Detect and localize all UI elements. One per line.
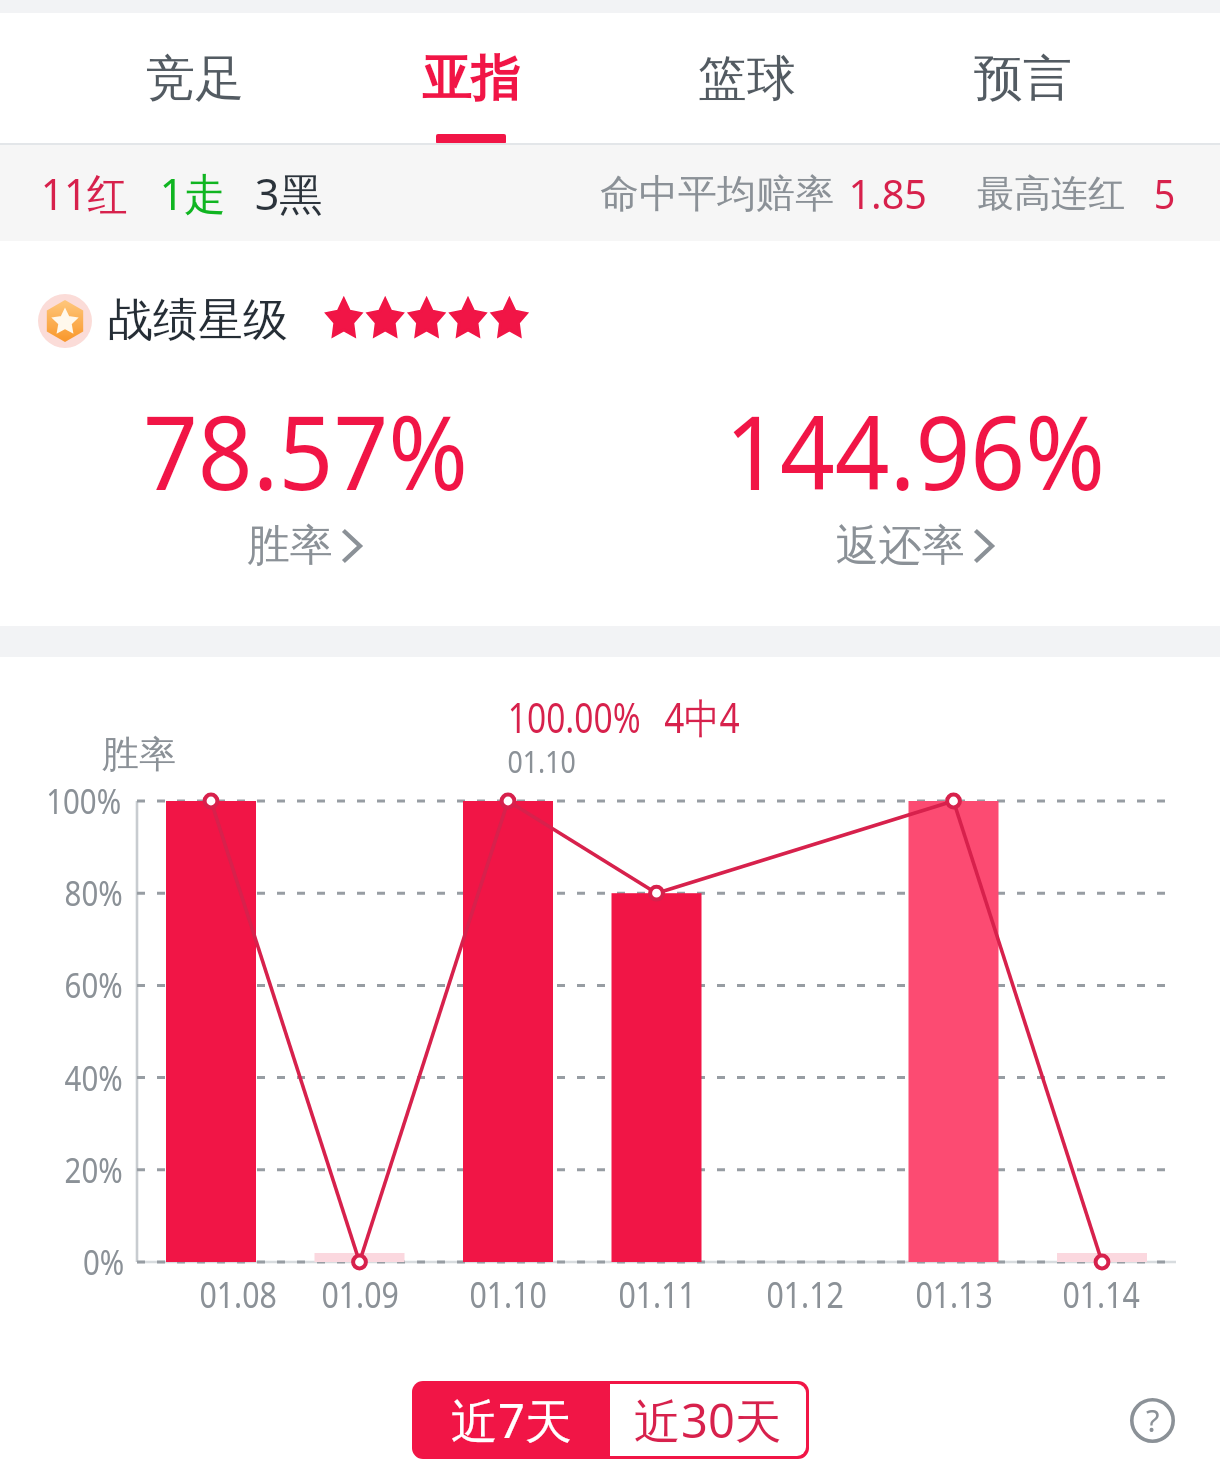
staticText: 01.10 xyxy=(508,740,576,782)
staticText: 返还率 xyxy=(836,519,965,573)
staticText: 01.13 xyxy=(915,1270,993,1319)
staticText: 胜率 xyxy=(102,731,176,778)
staticText: 40% xyxy=(65,1054,123,1102)
staticText: 11红 xyxy=(41,163,128,223)
staticText: 78.57% xyxy=(143,380,468,520)
staticText: 01.14 xyxy=(1062,1270,1140,1319)
button[interactable]: 78.57% xyxy=(55,380,555,590)
staticText: 近30天 xyxy=(634,1388,782,1452)
staticText: 1走 xyxy=(160,163,226,223)
button[interactable]: 亚指 xyxy=(333,13,609,143)
staticText: 80% xyxy=(65,869,123,917)
button[interactable]: 144.96% xyxy=(665,380,1165,590)
staticText: 0% xyxy=(83,1238,125,1286)
staticText: 01.08 xyxy=(199,1270,277,1319)
staticText: 100.00% xyxy=(508,688,641,745)
staticText: 预言 xyxy=(974,48,1072,110)
staticText: 01.11 xyxy=(618,1270,696,1319)
staticText: 20% xyxy=(65,1146,123,1194)
staticText: 竞足 xyxy=(146,48,244,110)
staticText: 01.09 xyxy=(321,1270,399,1319)
staticText: 命中平均赔率 xyxy=(600,169,834,218)
other: 战绩星级徽章 xyxy=(38,294,92,348)
button[interactable]: 预言 xyxy=(885,13,1161,143)
staticText: 144.96% xyxy=(725,380,1105,520)
staticText: 3黑 xyxy=(255,163,323,223)
staticText: 60% xyxy=(65,961,123,1009)
staticText: 战绩星级 xyxy=(108,292,288,344)
staticText: 近7天 xyxy=(451,1388,572,1452)
staticText: 1.85 xyxy=(848,166,928,220)
button[interactable]: 帮助说明 Help xyxy=(1130,1398,1175,1443)
other: 五星评级 xyxy=(326,298,534,340)
staticText: 5 xyxy=(1154,166,1175,220)
staticText: 4中4 xyxy=(664,689,740,745)
staticText: 胜率 xyxy=(247,519,333,573)
button[interactable]: 篮球 xyxy=(609,13,885,143)
button[interactable]: 近7天 xyxy=(412,1381,610,1459)
staticText: 01.10 xyxy=(469,1270,547,1319)
staticText: 01.12 xyxy=(766,1270,844,1319)
staticText: 100% xyxy=(46,777,122,825)
staticText: 亚指 xyxy=(422,48,520,110)
staticText: 篮球 xyxy=(698,48,796,110)
staticText: 最高连红 xyxy=(977,170,1125,217)
button[interactable]: 竞足 xyxy=(57,13,333,143)
staticText: ? xyxy=(1146,1399,1160,1441)
button[interactable]: 近30天 xyxy=(610,1384,806,1456)
